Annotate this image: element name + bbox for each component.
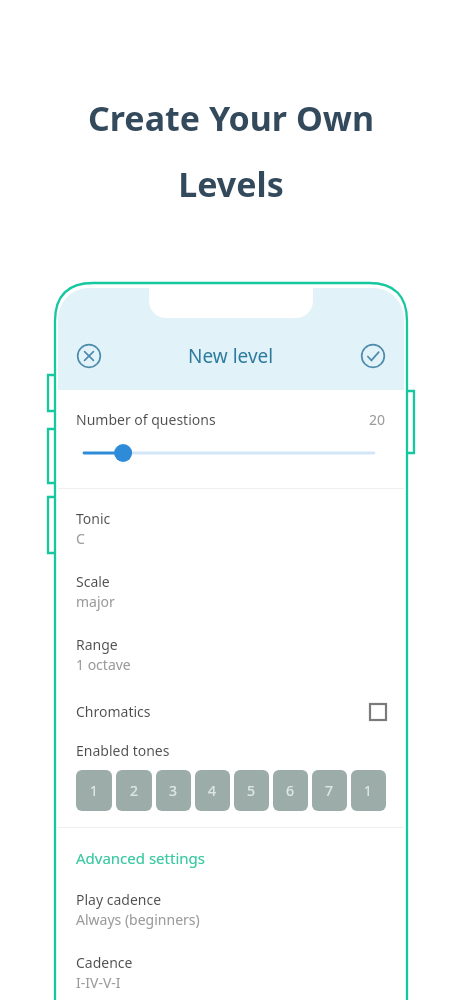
button[interactable]: Close <box>70 337 108 375</box>
staticText: 3 <box>169 781 178 800</box>
button[interactable]: Play cadence <box>58 882 404 937</box>
staticText: major <box>76 592 115 611</box>
button[interactable]: Scale <box>58 564 404 619</box>
staticText: 5 <box>247 781 256 800</box>
button[interactable]: 1 <box>76 770 112 811</box>
button[interactable]: 5 <box>234 770 269 811</box>
staticText: Scale <box>76 572 110 591</box>
staticText: 7 <box>325 781 334 800</box>
staticText: I-IV-V-I <box>76 973 121 992</box>
button[interactable]: Chromatics <box>58 694 404 729</box>
staticText: 1 <box>90 781 99 800</box>
button[interactable]: Number of questions <box>76 442 386 464</box>
staticText: 6 <box>286 781 295 800</box>
button[interactable]: 4 <box>195 770 230 811</box>
staticText: Cadence <box>76 953 133 972</box>
staticText: 20 <box>369 410 386 429</box>
staticText: 2 <box>130 781 139 800</box>
staticText: C <box>76 529 85 548</box>
button[interactable]: 3 <box>156 770 191 811</box>
staticText: Chromatics <box>76 702 151 721</box>
button[interactable]: 1 <box>351 770 386 811</box>
button[interactable]: Tonic <box>58 501 404 556</box>
staticText: Tonic <box>76 509 111 528</box>
button[interactable]: Advanced settings <box>58 848 205 868</box>
staticText: 1 <box>364 781 373 800</box>
button[interactable]: Cadence <box>58 945 404 1000</box>
staticText: New level <box>188 343 274 369</box>
staticText: Enabled tones <box>76 741 170 760</box>
button[interactable]: 2 <box>116 770 152 811</box>
button[interactable]: Save level <box>354 337 392 375</box>
button[interactable]: 7 <box>312 770 347 811</box>
staticText: Play cadence <box>76 890 162 909</box>
button[interactable]: 6 <box>273 770 308 811</box>
staticText: Number of questions <box>76 410 216 429</box>
staticText: Always (beginners) <box>76 910 200 929</box>
staticText: 1 octave <box>76 655 131 674</box>
staticText: Levels <box>30 161 432 207</box>
button[interactable]: Range <box>58 627 404 682</box>
staticText: 4 <box>208 781 217 800</box>
staticText: Range <box>76 635 118 654</box>
staticText: Create Your Own <box>30 95 432 141</box>
